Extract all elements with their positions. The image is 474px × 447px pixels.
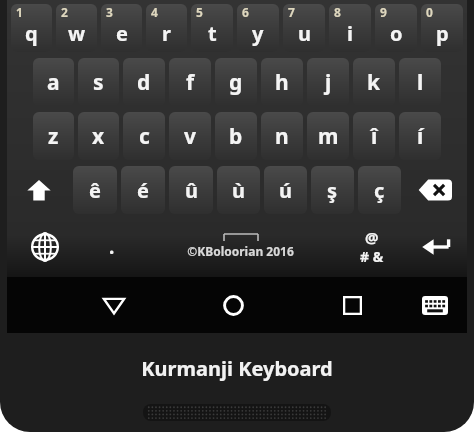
button[interactable]: û bbox=[169, 166, 213, 214]
staticText: ç bbox=[374, 177, 385, 204]
button[interactable]: ©KBoloorian 2016 bbox=[141, 216, 339, 277]
button[interactable]: j bbox=[307, 58, 349, 106]
button[interactable]: í bbox=[399, 112, 441, 160]
button[interactable]: ş bbox=[311, 166, 354, 214]
button[interactable]: x bbox=[78, 112, 119, 160]
button[interactable]: f bbox=[169, 58, 211, 106]
button[interactable]: ç bbox=[358, 166, 401, 214]
button[interactable]: ú bbox=[264, 166, 307, 214]
button[interactable]: 2 bbox=[56, 4, 97, 52]
button[interactable]: 1 bbox=[11, 4, 52, 52]
button[interactable]: b bbox=[215, 112, 257, 160]
button[interactable]: a bbox=[33, 58, 74, 106]
button[interactable]: k bbox=[353, 58, 395, 106]
staticText: z bbox=[48, 122, 59, 151]
staticText: s bbox=[93, 68, 104, 97]
button[interactable]: Back bbox=[91, 282, 137, 328]
button[interactable]: 0 bbox=[421, 4, 463, 52]
button[interactable]: 9 bbox=[375, 4, 417, 52]
staticText: a bbox=[47, 68, 60, 97]
button[interactable]: 5 bbox=[191, 4, 233, 52]
staticText: 8 bbox=[334, 4, 341, 20]
button[interactable]: g bbox=[215, 58, 257, 106]
staticText: t bbox=[208, 20, 217, 47]
button[interactable]: î bbox=[353, 112, 395, 160]
button[interactable]: 4 bbox=[146, 4, 187, 52]
staticText: e bbox=[116, 20, 128, 47]
button[interactable]: h bbox=[261, 58, 303, 106]
button[interactable]: Backspace bbox=[403, 166, 467, 214]
staticText: ú bbox=[279, 177, 292, 204]
button[interactable]: s bbox=[78, 58, 119, 106]
button[interactable]: m bbox=[307, 112, 349, 160]
staticText: Kurmanji Keyboard bbox=[141, 355, 333, 382]
button[interactable]: ê bbox=[73, 166, 117, 214]
staticText: 2 bbox=[61, 4, 68, 20]
staticText: m bbox=[318, 122, 339, 151]
staticText: @ bbox=[365, 227, 379, 247]
button[interactable]: Shift bbox=[7, 166, 71, 214]
staticText: í bbox=[417, 122, 424, 151]
button[interactable]: Home bbox=[210, 282, 256, 328]
button[interactable]: Keyboard bbox=[415, 285, 455, 325]
staticText: f bbox=[186, 68, 195, 97]
staticText: o bbox=[390, 20, 403, 47]
staticText: ê bbox=[89, 177, 101, 204]
staticText: b bbox=[229, 122, 243, 151]
staticText: ù bbox=[232, 177, 245, 204]
staticText: l bbox=[417, 68, 424, 97]
staticText: u bbox=[298, 20, 311, 47]
staticText: 3 bbox=[106, 4, 113, 20]
button[interactable]: 3 bbox=[101, 4, 142, 52]
staticText: c bbox=[139, 122, 150, 151]
button[interactable]: n bbox=[261, 112, 303, 160]
button[interactable]: @ bbox=[339, 216, 405, 277]
staticText: k bbox=[367, 68, 381, 97]
staticText: i bbox=[347, 20, 353, 47]
button[interactable]: c bbox=[123, 112, 165, 160]
staticText: û bbox=[185, 177, 198, 204]
button[interactable]: é bbox=[121, 166, 165, 214]
staticText: 6 bbox=[242, 4, 249, 20]
staticText: v bbox=[184, 122, 196, 151]
button[interactable]: d bbox=[123, 58, 165, 106]
staticText: 4 bbox=[151, 4, 158, 20]
button[interactable]: Recents bbox=[329, 282, 375, 328]
staticText: é bbox=[137, 177, 149, 204]
button[interactable]: Enter bbox=[405, 216, 467, 277]
staticText: h bbox=[275, 68, 289, 97]
staticText: 1 bbox=[16, 4, 23, 20]
staticText: w bbox=[68, 20, 86, 47]
staticText: . bbox=[109, 234, 115, 260]
staticText: 7 bbox=[288, 4, 295, 20]
button[interactable]: 6 bbox=[237, 4, 279, 52]
staticText: 5 bbox=[196, 4, 203, 20]
staticText: g bbox=[229, 68, 243, 97]
button[interactable]: ù bbox=[217, 166, 260, 214]
staticText: ş bbox=[327, 177, 338, 204]
staticText: î bbox=[371, 122, 378, 151]
staticText: q bbox=[25, 20, 38, 47]
staticText: d bbox=[137, 68, 151, 97]
button[interactable]: 8 bbox=[329, 4, 371, 52]
staticText: 9 bbox=[380, 4, 387, 20]
staticText: r bbox=[162, 20, 171, 47]
staticText: j bbox=[325, 68, 332, 97]
button[interactable]: 7 bbox=[283, 4, 325, 52]
staticText: n bbox=[275, 122, 289, 151]
button[interactable]: z bbox=[33, 112, 74, 160]
staticText: ©KBoloorian 2016 bbox=[187, 243, 294, 259]
staticText: y bbox=[252, 20, 264, 47]
staticText: x bbox=[92, 122, 105, 151]
button[interactable]: l bbox=[399, 58, 441, 106]
staticText: p bbox=[436, 20, 449, 47]
button[interactable]: Change language bbox=[7, 216, 83, 277]
staticText: # & bbox=[360, 247, 384, 266]
staticText: 0 bbox=[426, 4, 433, 20]
button[interactable]: . bbox=[83, 216, 141, 277]
button[interactable]: v bbox=[169, 112, 211, 160]
